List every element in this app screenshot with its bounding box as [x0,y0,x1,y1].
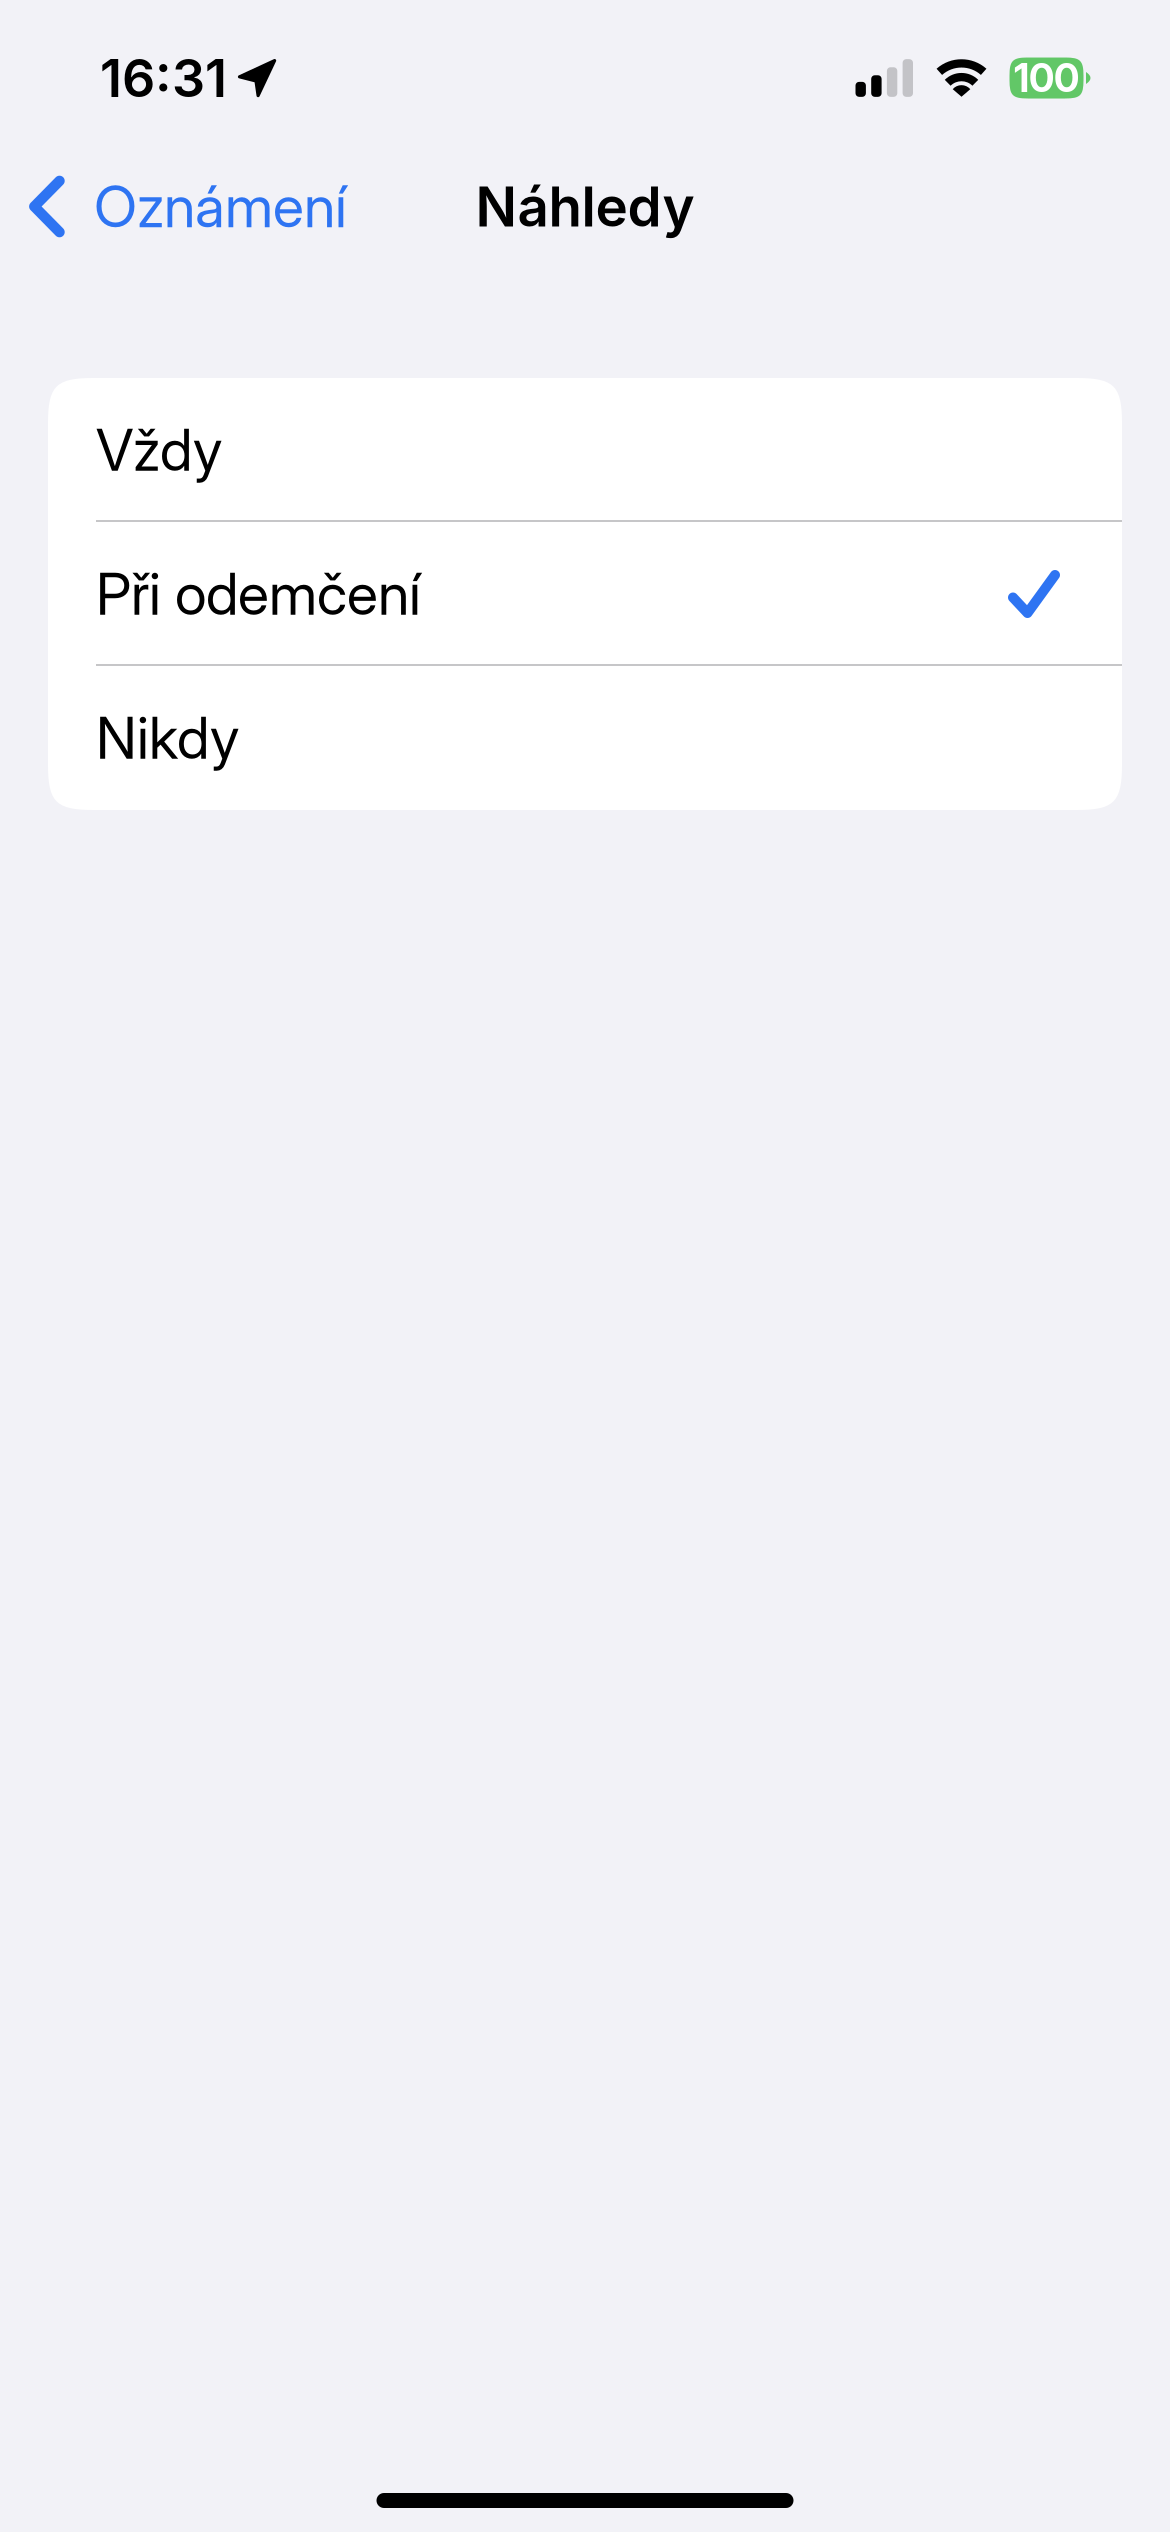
button[interactable]: Nikdy [48,666,1122,810]
button[interactable]: Oznámení [0,156,365,257]
staticText: Náhledy [475,173,694,239]
button[interactable]: Vždy [48,378,1122,522]
staticText: 100 [1014,55,1079,101]
staticText: Nikdy [96,703,239,773]
staticText: Vždy [96,415,222,485]
staticText: Při odemčení [96,559,421,629]
button[interactable]: Při odemčení [48,522,1122,666]
staticText: Oznámení [94,172,347,241]
staticText: 16:31 [100,46,227,109]
